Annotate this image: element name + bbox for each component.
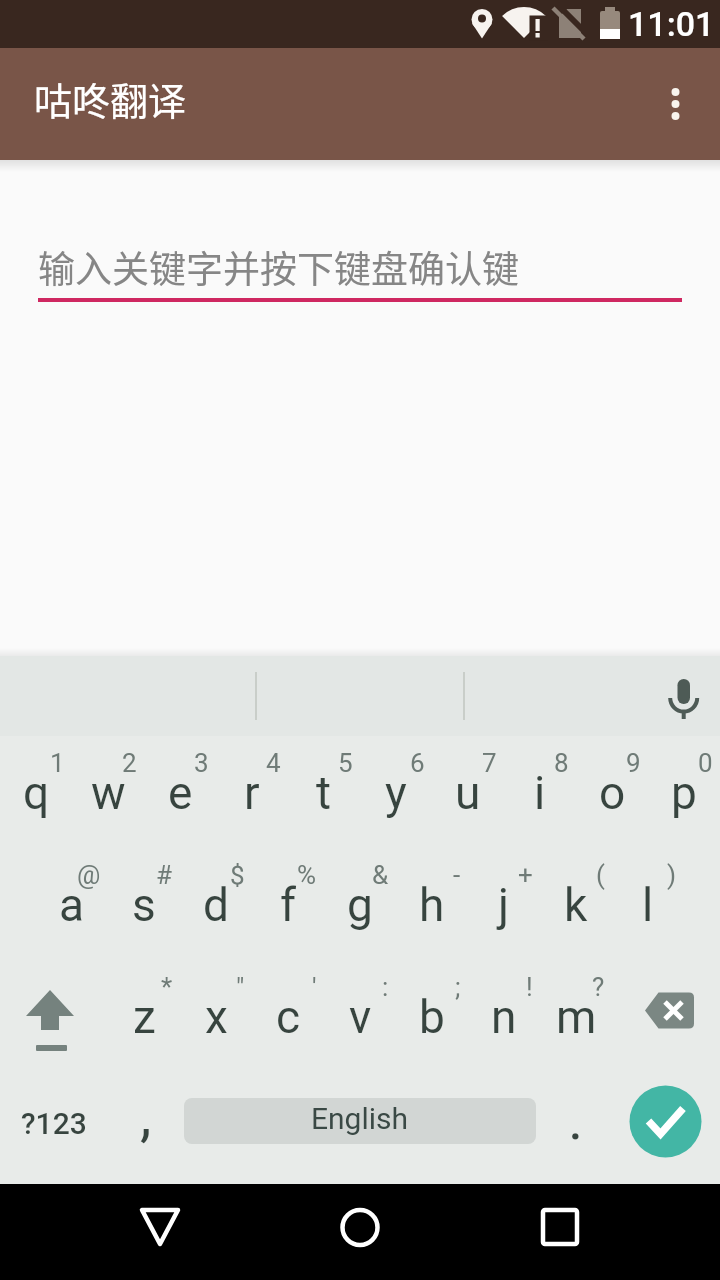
button[interactable]: ?123 — [0, 1072, 108, 1184]
button[interactable]: ) — [612, 848, 684, 960]
button[interactable]: ( — [540, 848, 612, 960]
button[interactable]: 3 — [144, 736, 216, 848]
button[interactable] — [240, 1184, 480, 1280]
button[interactable]: ! — [468, 960, 540, 1072]
staticText: ?123 — [21, 1106, 87, 1141]
staticText: o — [599, 766, 626, 820]
button[interactable] — [624, 48, 720, 160]
staticText: 3 — [194, 748, 209, 778]
staticText: k — [564, 878, 588, 932]
button[interactable]: 0 — [648, 736, 720, 848]
staticText: j — [498, 878, 510, 932]
staticText: d — [203, 878, 229, 932]
button[interactable]: 2 — [72, 736, 144, 848]
staticText: 2 — [122, 748, 137, 778]
button[interactable]: " — [180, 960, 252, 1072]
staticText: c — [276, 990, 301, 1044]
staticText: : — [382, 972, 389, 1002]
staticText: English — [311, 1101, 409, 1136]
button[interactable]: $ — [180, 848, 252, 960]
button[interactable]: + — [468, 848, 540, 960]
staticText: w — [91, 766, 126, 820]
staticText: 输入关键字并按下键盘确认键 — [38, 240, 519, 294]
button[interactable] — [480, 1184, 720, 1280]
staticText: 8 — [554, 748, 569, 778]
staticText: ) — [667, 860, 677, 890]
staticText: x — [205, 990, 228, 1044]
button[interactable]: ? — [540, 960, 612, 1072]
staticText: i — [534, 766, 546, 820]
staticText: t — [316, 766, 332, 820]
staticText: + — [518, 860, 533, 890]
staticText: ! — [526, 972, 533, 1002]
staticText: u — [455, 766, 481, 820]
button[interactable]: 输入关键字并按下键盘确认键 — [38, 240, 682, 304]
staticText: s — [132, 878, 156, 932]
staticText: p — [671, 766, 697, 820]
staticText: & — [372, 860, 389, 890]
staticText: f — [280, 878, 296, 932]
button[interactable]: * — [108, 960, 180, 1072]
button[interactable]: , — [108, 1072, 180, 1184]
staticText: z — [133, 990, 156, 1044]
staticText: r — [244, 766, 260, 820]
button[interactable]: - — [396, 848, 468, 960]
button[interactable]: ; — [396, 960, 468, 1072]
button[interactable]: 7 — [432, 736, 504, 848]
button[interactable]: 4 — [216, 736, 288, 848]
button[interactable]: : — [324, 960, 396, 1072]
staticText: " — [236, 972, 245, 1002]
staticText: ? — [592, 972, 605, 1002]
staticText: 11:01 — [628, 4, 715, 44]
button[interactable]: 6 — [360, 736, 432, 848]
staticText: v — [349, 990, 372, 1044]
staticText: ' — [312, 972, 317, 1002]
button[interactable]: # — [108, 848, 180, 960]
staticText: @ — [77, 860, 101, 890]
staticText: l — [642, 878, 654, 932]
staticText: 7 — [482, 748, 497, 778]
staticText: $ — [230, 860, 245, 890]
button[interactable] — [0, 1184, 240, 1280]
button[interactable] — [612, 960, 720, 1072]
staticText: * — [161, 972, 173, 1002]
staticText: y — [385, 766, 407, 820]
staticText: m — [556, 990, 597, 1044]
button[interactable] — [0, 960, 108, 1072]
button[interactable]: ' — [252, 960, 324, 1072]
staticText: , — [140, 1081, 152, 1149]
staticText: 1 — [50, 748, 65, 778]
button[interactable]: . — [540, 1072, 612, 1184]
button[interactable]: English — [180, 1072, 540, 1184]
staticText: 0 — [698, 748, 713, 778]
staticText: h — [419, 878, 445, 932]
staticText: a — [59, 878, 85, 932]
button[interactable]: 9 — [576, 736, 648, 848]
staticText: 5 — [338, 748, 353, 778]
staticText: b — [419, 990, 445, 1044]
button[interactable] — [648, 656, 720, 736]
staticText: # — [156, 860, 173, 890]
button[interactable]: 8 — [504, 736, 576, 848]
staticText: n — [491, 990, 517, 1044]
staticText: % — [297, 860, 317, 890]
button[interactable]: 5 — [288, 736, 360, 848]
staticText: 4 — [266, 748, 281, 778]
staticText: g — [347, 878, 373, 932]
button[interactable] — [612, 1072, 720, 1184]
staticText: 9 — [626, 748, 641, 778]
staticText: 咕咚翻译 — [34, 71, 187, 126]
button[interactable]: & — [324, 848, 396, 960]
button[interactable]: 1 — [0, 736, 72, 848]
staticText: ; — [455, 972, 461, 1002]
staticText: . — [568, 1085, 584, 1153]
staticText: q — [23, 766, 50, 820]
staticText: - — [453, 860, 461, 890]
staticText: ( — [596, 860, 605, 890]
button[interactable]: % — [252, 848, 324, 960]
staticText: e — [168, 766, 193, 820]
staticText: 6 — [410, 748, 425, 778]
button[interactable]: @ — [36, 848, 108, 960]
